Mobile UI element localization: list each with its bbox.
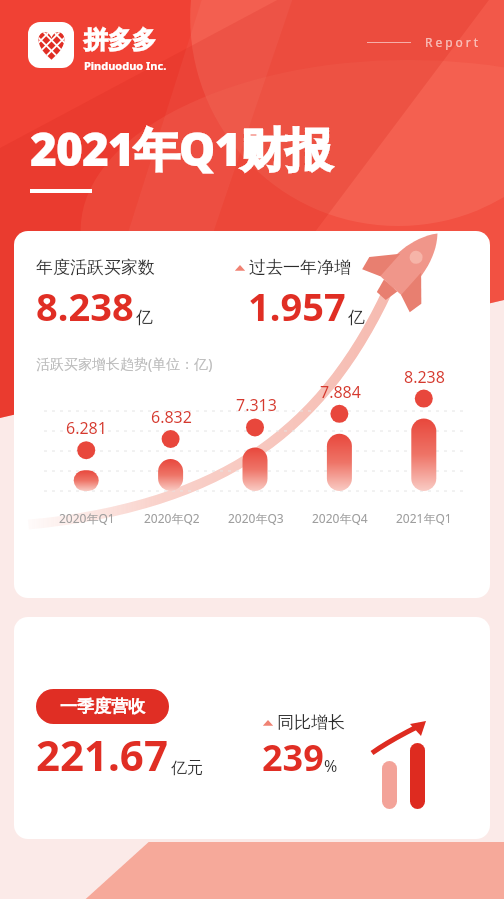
staticText: 1.957 [248,280,346,332]
staticText: 2021年Q1 [396,510,452,526]
staticText: 221.67 [36,726,168,783]
staticText: 亿 [136,307,153,328]
staticText: 2020年Q2 [144,510,200,526]
staticText: 239 [262,733,324,782]
staticText: 2020年Q1 [59,510,115,526]
staticText: 2020年Q4 [312,510,368,526]
staticText: 活跃买家增长趋势(单位：亿) [36,354,213,373]
staticText: % [324,755,338,777]
staticText: 7.884 [320,381,361,403]
staticText: Pinduoduo Inc. [84,58,167,73]
staticText: 年度活跃买家数 [36,257,155,278]
staticText: 2021年Q1财报 [30,117,331,180]
staticText: 8.238 [404,366,445,388]
staticText: 8.238 [36,280,134,332]
other: Growth chart [370,721,428,785]
staticText: 同比增长 [277,712,345,733]
staticText: 2020年Q3 [228,510,284,526]
staticText: 一季度营收 [60,696,145,717]
staticText: 亿 [348,307,365,328]
staticText: 拼多多 [84,25,156,55]
staticText: 亿元 [171,758,203,778]
staticText: Report [425,34,482,50]
staticText: 过去一年净增 [249,257,351,278]
button[interactable]: Pinduoduo logo [28,22,74,68]
staticText: 6.832 [151,406,192,428]
button[interactable]: 一季度营收 [14,617,490,839]
staticText: 7.313 [236,394,277,416]
staticText: 6.281 [66,417,107,439]
button[interactable]: 一季度营收 [36,689,169,724]
button[interactable]: 年度活跃买家数 [14,231,490,598]
